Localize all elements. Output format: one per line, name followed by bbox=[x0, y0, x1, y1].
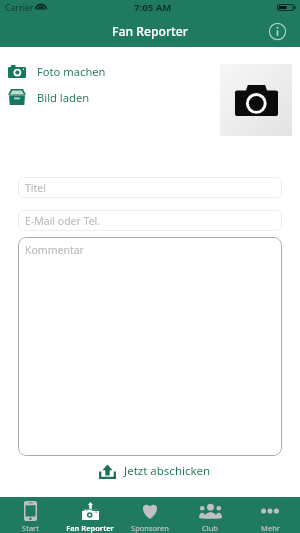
button[interactable]: Start bbox=[0, 497, 60, 533]
button[interactable]: Foto machen bbox=[0, 58, 200, 84]
staticText: Carrier bbox=[5, 2, 34, 14]
button[interactable]: Info bbox=[267, 21, 288, 42]
button[interactable]: Titel bbox=[18, 177, 282, 198]
staticText: Jetzt abschicken bbox=[124, 463, 211, 479]
staticText: Start bbox=[22, 523, 39, 533]
staticText: Club bbox=[202, 523, 218, 533]
staticText: Fan Reporter bbox=[66, 523, 114, 533]
button[interactable]: Mehr bbox=[240, 497, 300, 533]
button[interactable]: Kommentar bbox=[18, 237, 282, 456]
button[interactable]: Club bbox=[180, 497, 240, 533]
button[interactable]: E-Mail oder Tel. bbox=[18, 210, 282, 231]
button[interactable]: Jetzt abschicken bbox=[99, 460, 223, 482]
staticText: Bild laden bbox=[37, 90, 90, 105]
button[interactable]: Bild bbox=[220, 64, 292, 136]
button[interactable]: Bild laden bbox=[0, 84, 200, 110]
button[interactable]: Sponsoren bbox=[120, 497, 180, 533]
staticText: Fan Reporter bbox=[112, 23, 188, 40]
button[interactable]: Fan Reporter bbox=[60, 497, 120, 533]
staticText: Foto machen bbox=[37, 64, 106, 79]
staticText: Kommentar bbox=[25, 243, 84, 257]
staticText: Titel bbox=[25, 181, 46, 195]
staticText: 7:05 AM bbox=[134, 1, 172, 14]
staticText: E-Mail oder Tel. bbox=[25, 214, 101, 228]
staticText: Mehr bbox=[261, 523, 280, 533]
staticText: Sponsoren bbox=[131, 523, 169, 533]
